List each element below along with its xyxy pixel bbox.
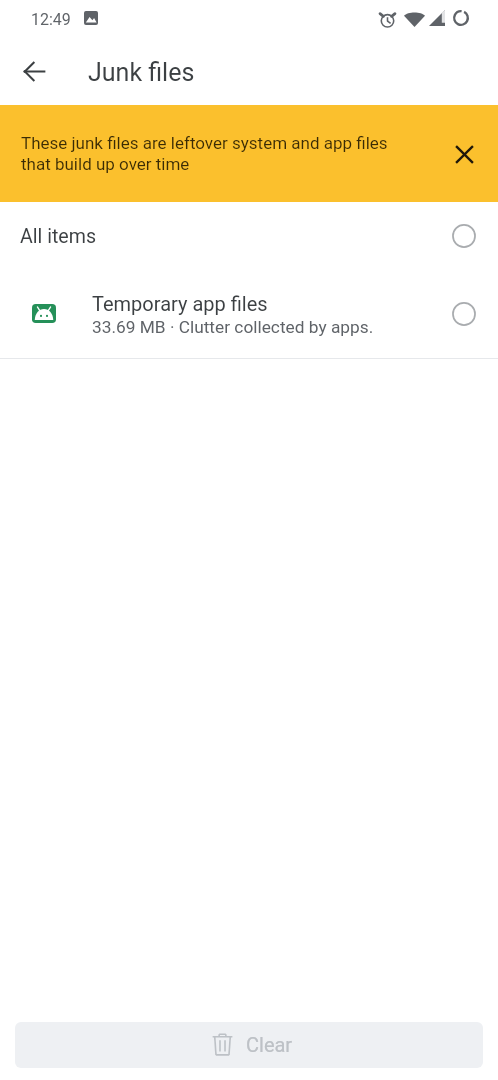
staticText: Clear: [246, 1033, 293, 1056]
button[interactable]: Temporary app files: [0, 269, 498, 358]
button[interactable]: Dismiss: [434, 124, 494, 184]
button[interactable]: All items: [0, 202, 498, 269]
staticText: All items: [20, 225, 97, 248]
staticText: 33.69 MB · Clutter collected by apps.: [92, 317, 374, 337]
staticText: Junk files: [88, 58, 195, 87]
staticText: 12:49: [31, 10, 71, 29]
staticText: Temporary app files: [92, 292, 268, 315]
staticText: These junk files are leftover system and…: [21, 133, 408, 174]
button[interactable]: Select all items: [443, 215, 485, 257]
button[interactable]: Back: [10, 47, 58, 95]
button[interactable]: Clear: [15, 1022, 483, 1068]
button[interactable]: Select temporary app files: [443, 293, 485, 335]
